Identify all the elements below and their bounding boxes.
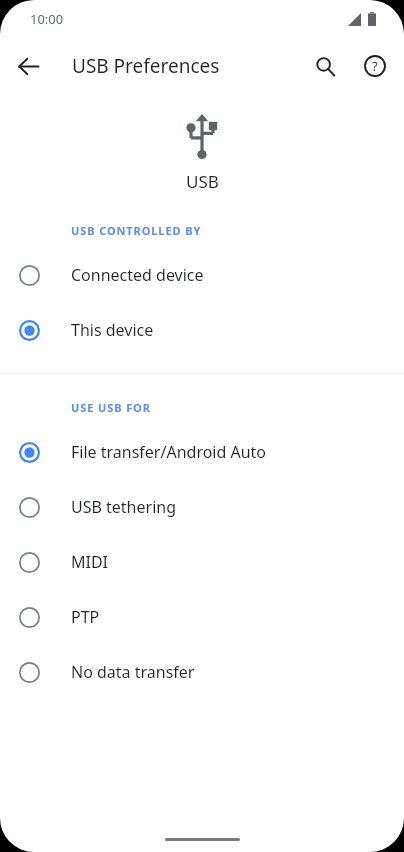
staticText: No data transfer: [71, 661, 195, 683]
staticText: MIDI: [71, 551, 109, 573]
button[interactable]: PTP: [0, 589, 404, 644]
staticText: USB Preferences: [72, 53, 220, 79]
button[interactable]: USB tethering: [0, 479, 404, 534]
button[interactable]: Back: [8, 46, 48, 86]
button[interactable]: Search: [302, 43, 348, 89]
button[interactable]: File transfer/Android Auto: [0, 424, 404, 479]
staticText: USB tethering: [71, 496, 176, 518]
staticText: File transfer/Android Auto: [71, 441, 267, 463]
staticText: 10:00: [30, 10, 64, 28]
staticText: ?: [372, 57, 378, 75]
button[interactable]: This device: [0, 302, 404, 357]
staticText: This device: [71, 319, 154, 341]
staticText: USB: [186, 170, 219, 193]
staticText: USB CONTROLLED BY: [71, 223, 202, 238]
staticText: PTP: [71, 606, 100, 628]
button[interactable]: MIDI: [0, 534, 404, 589]
staticText: USE USB FOR: [71, 400, 151, 415]
staticText: Connected device: [71, 264, 204, 286]
button[interactable]: Connected device: [0, 247, 404, 302]
button[interactable]: No data transfer: [0, 644, 404, 699]
button[interactable]: Help: [352, 43, 398, 89]
